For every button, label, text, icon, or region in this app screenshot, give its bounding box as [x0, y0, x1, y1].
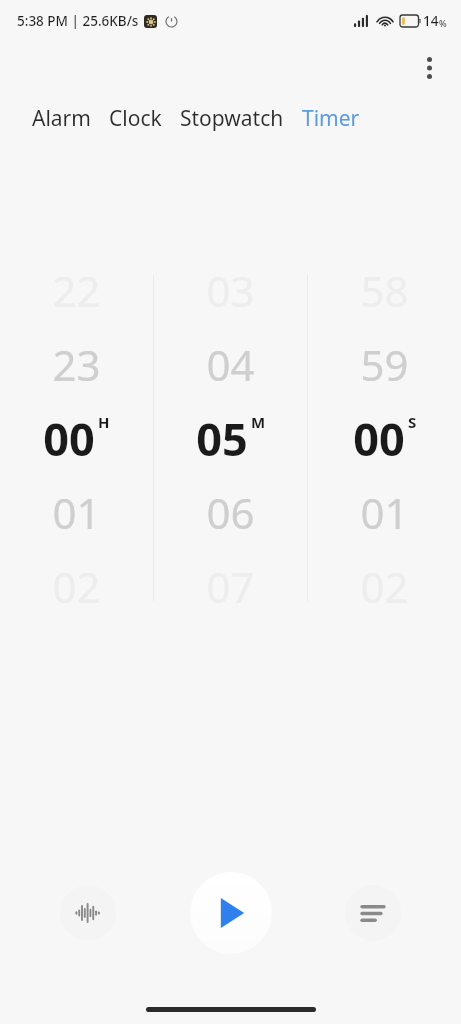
staticText: 59: [360, 336, 409, 393]
button[interactable]: 03: [154, 253, 307, 623]
button[interactable]: Timer: [298, 96, 364, 141]
staticText: 01: [52, 484, 101, 541]
staticText: H: [98, 412, 110, 432]
staticText: Clock: [109, 104, 162, 133]
staticText: 22: [52, 262, 101, 319]
button[interactable]: Alarm: [28, 96, 95, 141]
staticText: 06: [206, 484, 255, 541]
staticText: Alarm: [32, 104, 91, 133]
staticText: 58: [360, 262, 409, 319]
staticText: 5:38 PM | 25.6KB/s: [17, 12, 139, 30]
button[interactable]: 22: [0, 253, 153, 623]
staticText: 01: [360, 484, 409, 541]
button[interactable]: Stopwatch: [176, 96, 288, 141]
staticText: 00: [43, 408, 95, 469]
button[interactable]: Presets: [345, 885, 401, 941]
staticText: 00: [353, 408, 405, 469]
staticText: 23: [52, 336, 101, 393]
button[interactable]: Ringtone: [60, 885, 116, 941]
button[interactable]: Start timer: [190, 872, 272, 954]
button[interactable]: 58: [308, 253, 461, 623]
staticText: %: [439, 17, 447, 29]
staticText: 03: [206, 262, 255, 319]
button[interactable]: Clock: [105, 96, 166, 141]
staticText: 04: [206, 336, 255, 393]
staticText: Stopwatch: [180, 104, 284, 133]
staticText: 14: [423, 12, 439, 30]
button[interactable]: More options: [405, 44, 453, 92]
staticText: 02: [52, 558, 101, 615]
staticText: S: [408, 412, 417, 432]
staticText: 02: [360, 558, 409, 615]
staticText: 05: [196, 408, 248, 469]
staticText: M: [251, 412, 266, 432]
staticText: 07: [206, 558, 255, 615]
staticText: Timer: [302, 104, 360, 133]
